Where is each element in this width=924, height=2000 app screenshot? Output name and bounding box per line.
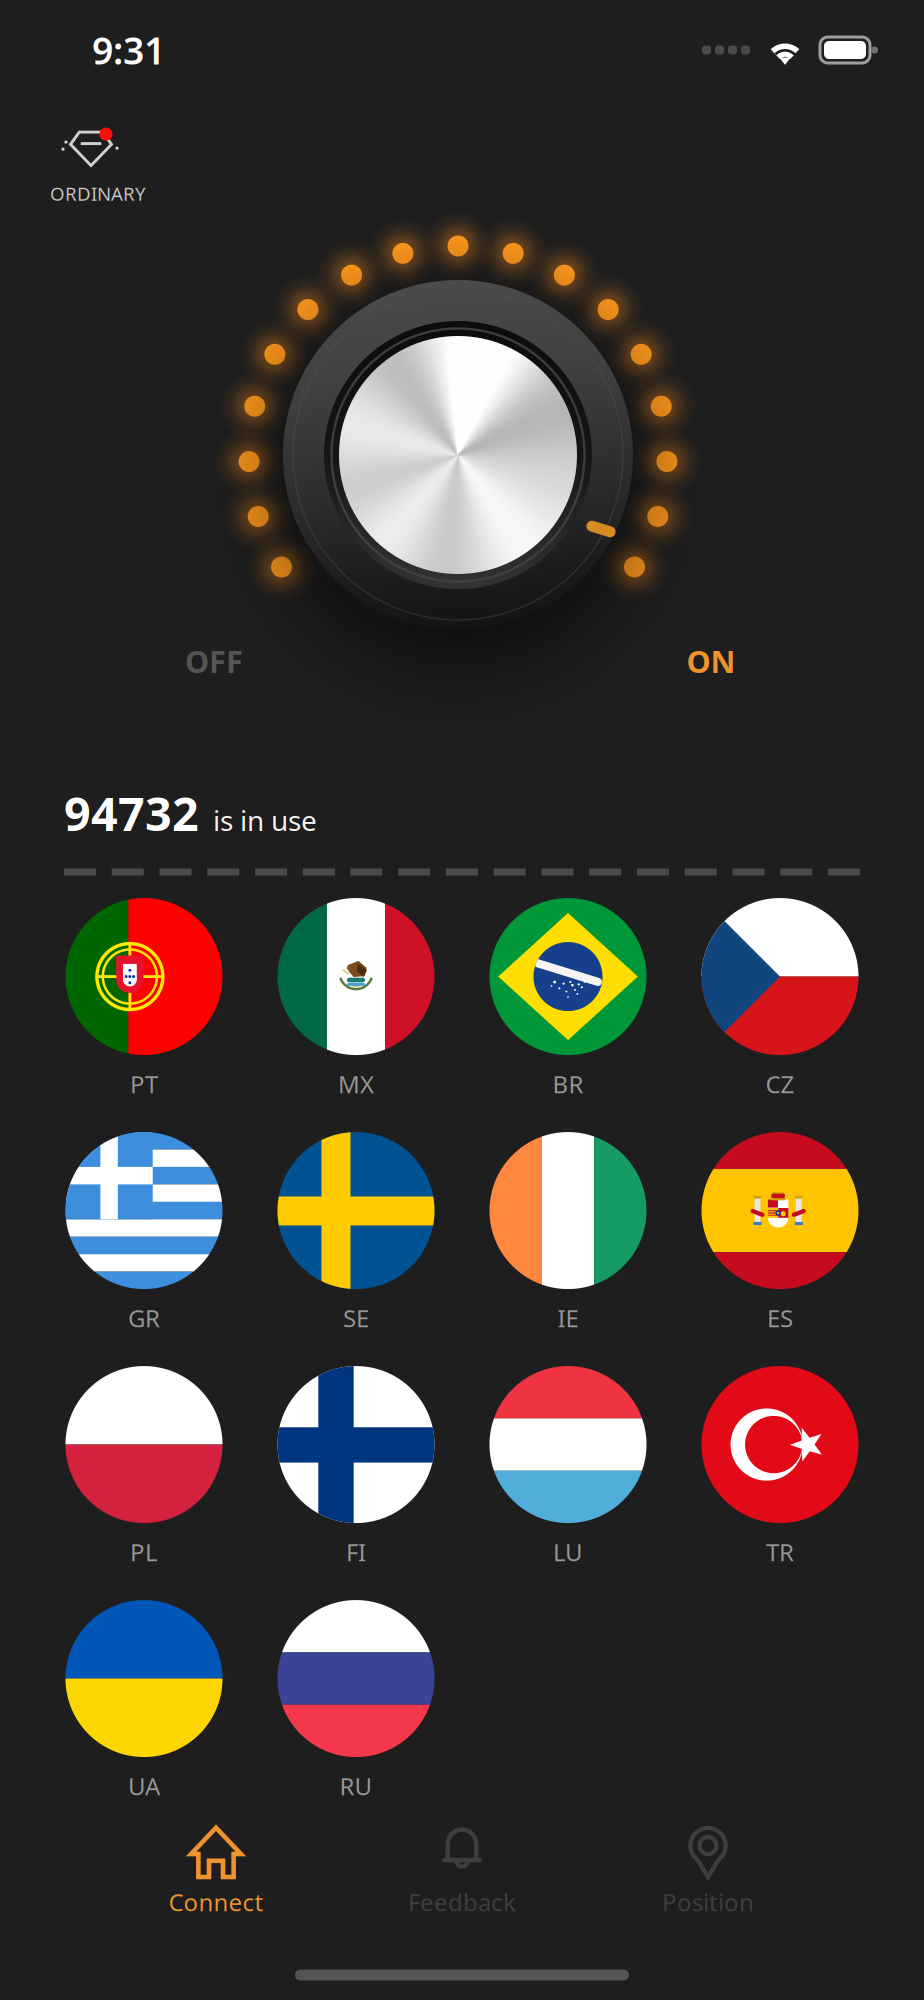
button[interactable]: TR [674,1360,886,1573]
staticText: SE [343,1302,369,1334]
staticText: Connect [168,1886,263,1918]
button[interactable]: LU [462,1360,674,1573]
staticText: LU [553,1536,583,1568]
button[interactable]: ORDINARY [50,118,220,214]
staticText: MX [338,1068,374,1100]
staticText: RU [339,1770,372,1802]
button[interactable]: FI [250,1360,462,1573]
button[interactable]: RU [250,1594,462,1807]
staticText: 94732 [64,782,199,844]
button[interactable]: ES [674,1126,886,1339]
staticText: IE [557,1302,578,1334]
button[interactable]: CZ [674,892,886,1105]
button[interactable]: Feedback [339,1819,585,1923]
staticText: FI [346,1536,366,1568]
staticText: ES [767,1302,793,1334]
staticText: BR [552,1068,583,1100]
staticText: OFF [185,641,243,681]
staticText: GR [128,1302,160,1334]
staticText: PT [130,1068,158,1100]
staticText: Feedback [408,1886,516,1918]
staticText: ORDINARY [50,181,146,206]
staticText: UA [128,1770,160,1802]
staticText: Position [662,1886,754,1918]
staticText: TR [766,1536,794,1568]
button[interactable]: PT [38,892,250,1105]
staticText: 9:31 [92,25,165,75]
button[interactable]: Connect [93,1819,339,1923]
staticText: CZ [765,1068,794,1100]
staticText: ON [686,641,735,681]
button[interactable]: PL [38,1360,250,1573]
button[interactable]: GR [38,1126,250,1339]
button[interactable]: IE [462,1126,674,1339]
staticText: is in use [213,802,317,839]
button[interactable]: SE [250,1126,462,1339]
button[interactable]: Position [585,1819,831,1923]
button[interactable]: UA [38,1594,250,1807]
button[interactable]: BR [462,892,674,1105]
staticText: PL [130,1536,158,1568]
button[interactable]: MX [250,892,462,1105]
button[interactable]: Power switch [215,212,701,698]
